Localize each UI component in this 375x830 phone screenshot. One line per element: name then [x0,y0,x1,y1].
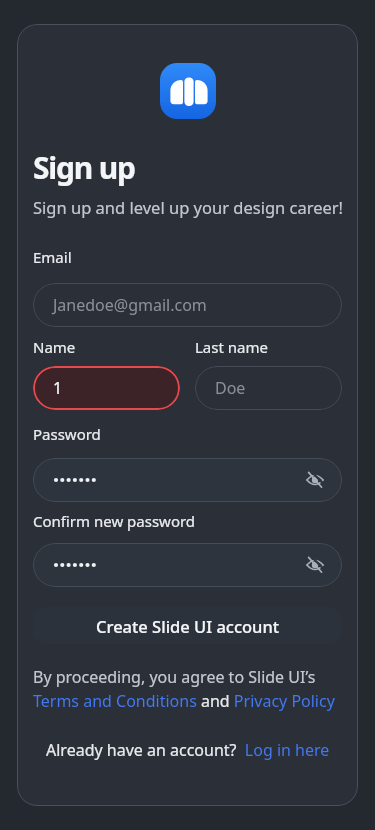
button[interactable]: Already have an account? Log in here [46,739,330,761]
staticText: 1 [53,377,63,399]
staticText: Sign up and level up your design career! [33,196,344,218]
staticText: Name [33,337,76,357]
button[interactable]: Create Slide UI account [33,607,342,644]
staticText: Sign up [33,147,135,188]
button[interactable]: Doe [195,366,342,410]
staticText: By proceeding, you agree to Slide UI’s [33,666,316,688]
button[interactable]: 1 [33,366,180,410]
staticText: Email [33,247,72,267]
staticText: Password [33,424,101,444]
button[interactable]: Janedoe@gmail.com [33,283,342,327]
button[interactable] [33,543,342,587]
staticText: Already have an account? Log in here [46,739,330,761]
staticText: Janedoe@gmail.com [53,294,207,316]
staticText: Confirm new password [33,511,196,531]
button[interactable] [33,458,342,502]
staticText: Last name [195,337,268,357]
staticText: Doe [215,377,246,399]
button[interactable]: Terms and Conditions and Privacy Policy [33,690,335,712]
staticText: Create Slide UI account [96,615,280,637]
button[interactable] [160,63,216,119]
